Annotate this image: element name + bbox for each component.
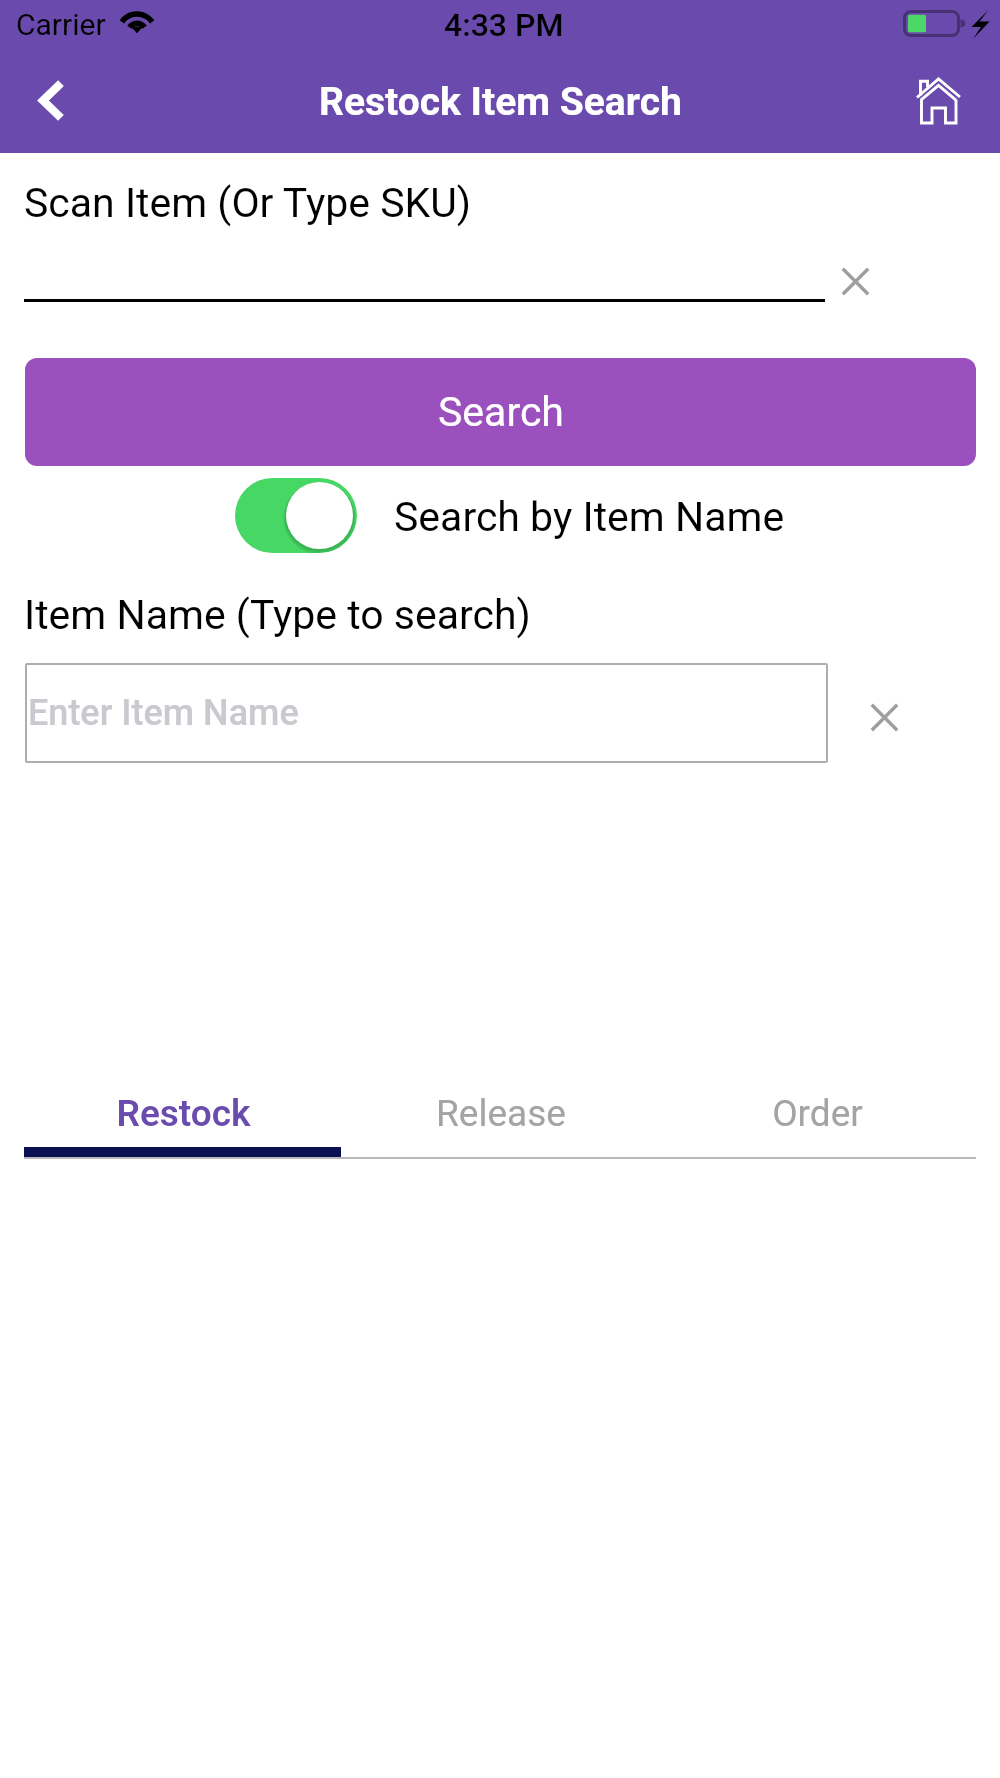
staticText: Search <box>438 388 564 436</box>
staticText: Search by Item Name <box>394 493 785 541</box>
staticText: Item Name (Type to search) <box>24 591 531 639</box>
button[interactable]: Enter Item Name <box>25 663 828 763</box>
button[interactable]: Restock <box>24 1080 342 1147</box>
button[interactable]: Home <box>903 65 975 137</box>
staticText: Restock <box>116 1092 251 1135</box>
staticText: 4:33 PM <box>444 6 564 44</box>
button[interactable]: Search by Item Name toggle <box>235 478 357 553</box>
staticText: Order <box>772 1092 863 1135</box>
button[interactable]: Clear item name <box>854 687 914 747</box>
button[interactable] <box>24 246 825 302</box>
button[interactable]: Back <box>14 64 86 136</box>
staticText: Carrier <box>16 7 106 42</box>
button[interactable]: Clear SKU <box>825 251 885 311</box>
staticText: Restock Item Search <box>319 79 682 125</box>
staticText: Release <box>436 1092 566 1135</box>
staticText: Enter Item Name <box>28 692 299 734</box>
button[interactable]: Search <box>25 358 976 466</box>
button[interactable]: Release <box>342 1080 659 1147</box>
button[interactable]: Order <box>659 1080 976 1147</box>
staticText: Scan Item (Or Type SKU) <box>24 179 472 227</box>
